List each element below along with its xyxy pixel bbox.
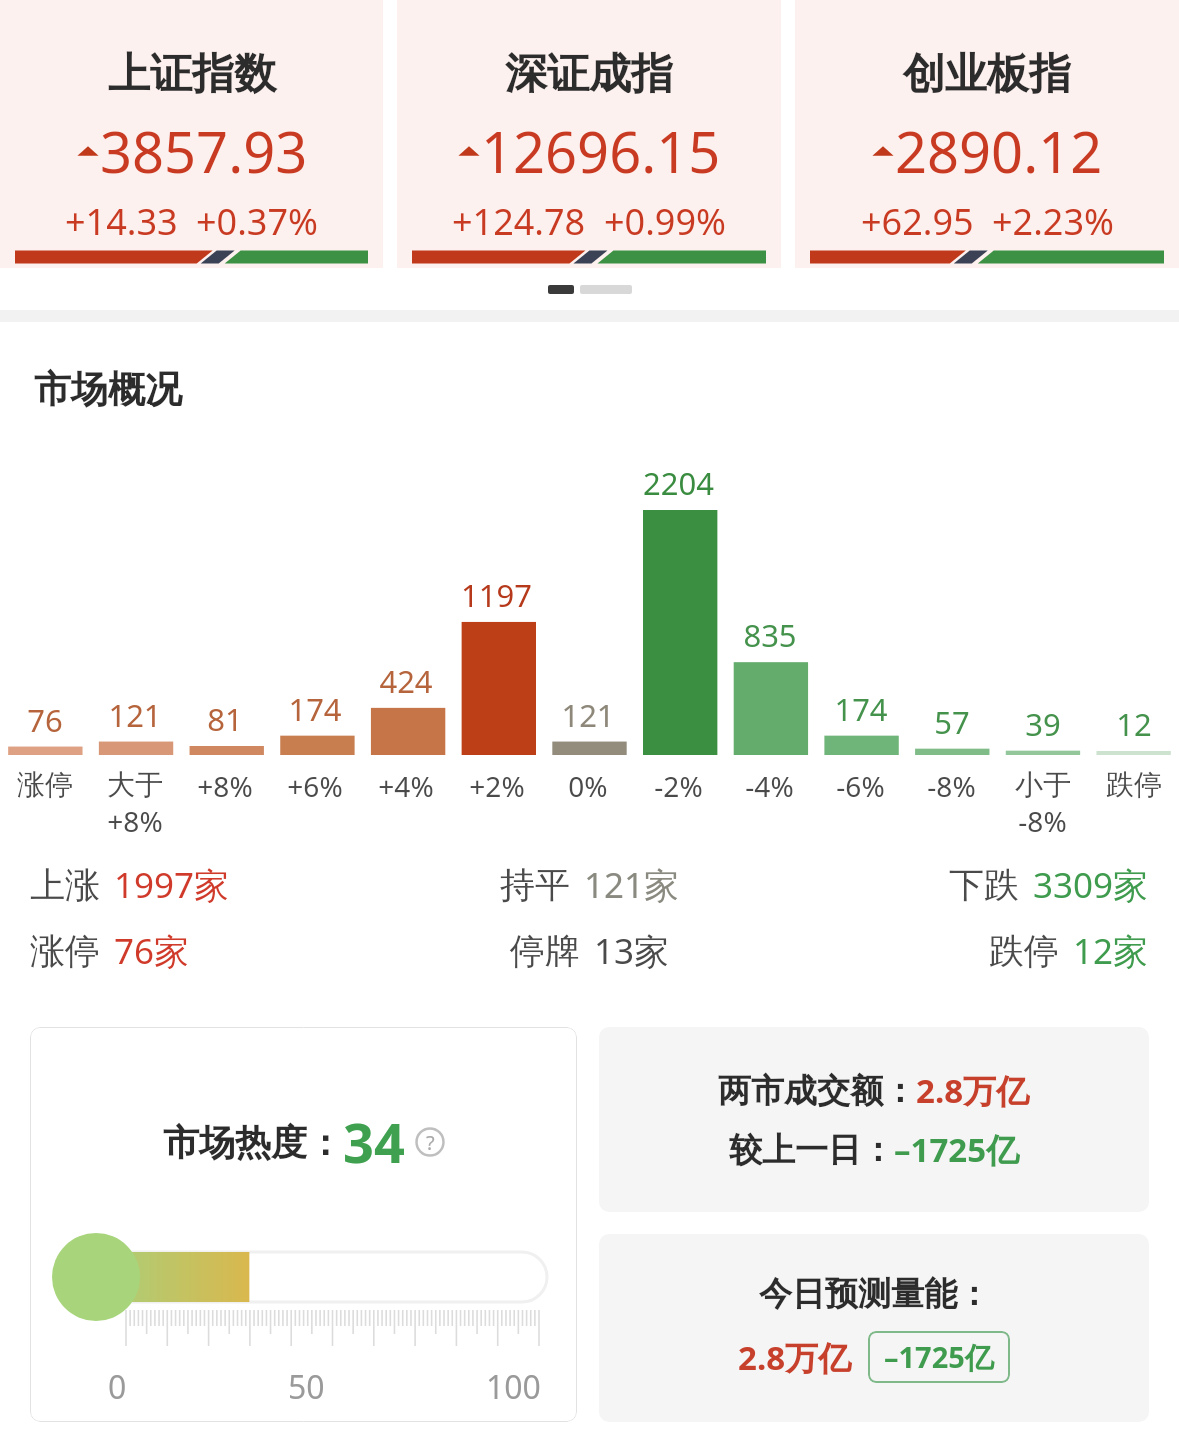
staticText: 下跌 bbox=[949, 863, 1019, 907]
staticText: 174 bbox=[834, 688, 888, 730]
staticText: 12696.15 bbox=[481, 113, 721, 189]
button[interactable]: 深证成指 bbox=[397, 0, 781, 268]
staticText: 13家 bbox=[594, 927, 670, 975]
staticText: 57 bbox=[934, 701, 970, 743]
staticText: 较上一日： bbox=[729, 1129, 894, 1171]
staticText: 停牌 bbox=[510, 929, 580, 973]
staticText: 0% bbox=[568, 767, 608, 805]
staticText: 12家 bbox=[1073, 927, 1149, 975]
staticText: +124.78 bbox=[452, 197, 586, 246]
button[interactable]: 创业板指 bbox=[795, 0, 1179, 268]
staticText: 12 bbox=[1116, 703, 1152, 745]
staticText: 上证指数 bbox=[108, 48, 276, 101]
staticText: 1997家 bbox=[114, 861, 230, 909]
staticText: 持平 bbox=[500, 863, 570, 907]
staticText: +8% bbox=[107, 802, 163, 840]
staticText: 424 bbox=[379, 660, 433, 702]
staticText: 跌停 bbox=[1106, 767, 1162, 802]
staticText: 34 bbox=[343, 1105, 405, 1179]
staticText: 1197 bbox=[461, 574, 532, 616]
staticText: -4% bbox=[745, 767, 794, 805]
staticText: 小于 bbox=[1015, 767, 1071, 802]
staticText: 2204 bbox=[643, 462, 714, 504]
staticText: +8% bbox=[197, 767, 253, 805]
button[interactable]: 今日预测量能： bbox=[599, 1234, 1149, 1422]
staticText: 39 bbox=[1025, 703, 1061, 745]
staticText: 50 bbox=[288, 1365, 325, 1409]
staticText: 市场概况 bbox=[34, 366, 182, 413]
button[interactable]: 两市成交额： bbox=[599, 1027, 1149, 1212]
staticText: 76家 bbox=[114, 927, 190, 975]
staticText: 121 bbox=[561, 694, 615, 736]
staticText: +62.95 bbox=[861, 197, 974, 246]
staticText: 大于 bbox=[107, 767, 163, 802]
staticText: 市场热度： bbox=[163, 1120, 343, 1165]
staticText: 121 bbox=[108, 694, 162, 736]
staticText: +2.23% bbox=[992, 197, 1114, 246]
staticText: +0.99% bbox=[604, 197, 726, 246]
staticText: –1725亿 bbox=[884, 1337, 994, 1377]
staticText: 上涨 bbox=[30, 863, 100, 907]
staticText: 跌停 bbox=[989, 929, 1059, 973]
staticText: 835 bbox=[743, 614, 797, 656]
button[interactable]: 上证指数 bbox=[0, 0, 383, 268]
staticText: 100 bbox=[486, 1365, 541, 1409]
staticText: 两市成交额： bbox=[718, 1070, 916, 1112]
staticText: 2.8万亿 bbox=[916, 1068, 1030, 1113]
staticText: 创业板指 bbox=[903, 48, 1071, 101]
staticText: +14.33 bbox=[65, 197, 178, 246]
staticText: 涨停 bbox=[17, 767, 73, 802]
staticText: 174 bbox=[288, 688, 342, 730]
staticText: 76 bbox=[27, 699, 63, 741]
staticText: 3857.93 bbox=[100, 113, 308, 189]
staticText: 81 bbox=[207, 698, 243, 740]
staticText: -6% bbox=[836, 767, 885, 805]
staticText: 0 bbox=[108, 1365, 127, 1409]
staticText: -2% bbox=[654, 767, 703, 805]
staticText: -8% bbox=[927, 767, 976, 805]
staticText: 2.8万亿 bbox=[738, 1335, 852, 1380]
staticText: -8% bbox=[1018, 802, 1067, 840]
button[interactable]: 说明 bbox=[415, 1127, 445, 1157]
staticText: –1725亿 bbox=[894, 1127, 1020, 1172]
staticText: 2890.12 bbox=[895, 113, 1103, 189]
staticText: +2% bbox=[469, 767, 525, 805]
staticText: ? bbox=[426, 1129, 435, 1156]
staticText: 3309家 bbox=[1033, 861, 1149, 909]
staticText: 121家 bbox=[584, 861, 680, 909]
staticText: +4% bbox=[378, 767, 434, 805]
staticText: 涨停 bbox=[30, 929, 100, 973]
staticText: +0.37% bbox=[196, 197, 318, 246]
staticText: 深证成指 bbox=[505, 48, 673, 101]
staticText: +6% bbox=[287, 767, 343, 805]
staticText: 今日预测量能： bbox=[759, 1273, 990, 1315]
button[interactable]: 市场热度： bbox=[30, 1027, 577, 1422]
